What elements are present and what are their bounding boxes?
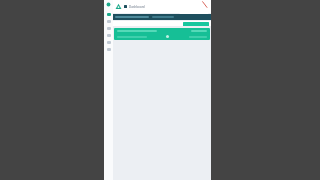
button[interactable]: Nav item 2	[107, 20, 111, 23]
staticText: Dashboard	[129, 5, 145, 9]
button[interactable]: Menu	[106, 2, 111, 7]
button[interactable]: Nav item 1	[107, 13, 111, 16]
button[interactable]: App logo	[115, 3, 122, 10]
button[interactable]: Nav item 6	[107, 48, 111, 51]
button[interactable]: Nav item 4	[107, 34, 111, 37]
button[interactable]: Nav item 3	[107, 27, 111, 30]
button[interactable]: Primary action	[183, 22, 209, 26]
button[interactable]	[113, 14, 211, 20]
button[interactable]: Summary card	[114, 28, 210, 40]
button[interactable]: Nav item 5	[107, 41, 111, 44]
